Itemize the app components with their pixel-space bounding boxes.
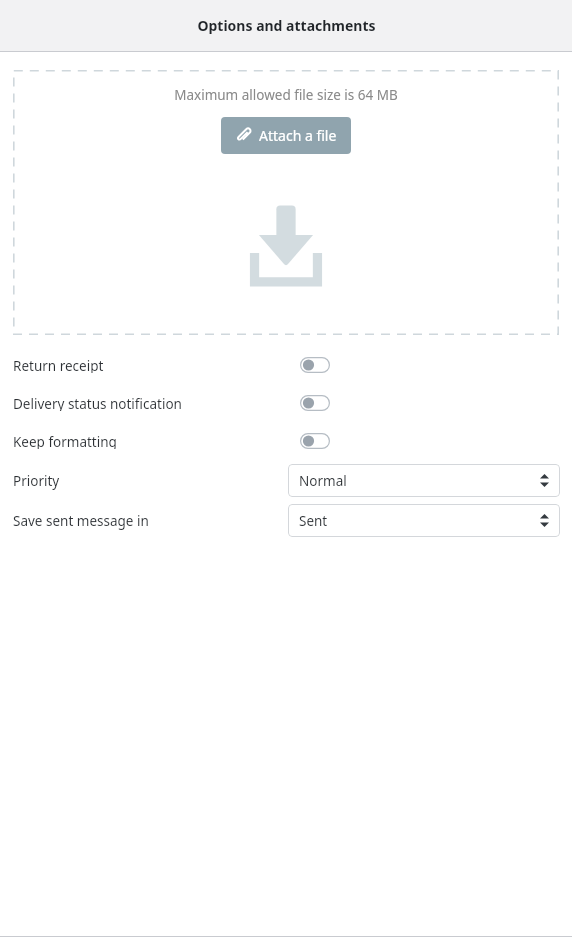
staticText: Delivery status notification — [13, 395, 182, 411]
staticText: Options and attachments — [197, 16, 376, 35]
button[interactable]: Normal — [288, 464, 560, 497]
button[interactable]: Keep formatting — [300, 433, 330, 449]
button[interactable]: Sent — [288, 504, 560, 537]
staticText: Normal — [299, 472, 347, 490]
button[interactable]: Delivery status notification — [300, 395, 330, 411]
staticText: Return receipt — [13, 357, 104, 373]
staticText: Attach a file — [259, 126, 337, 145]
button[interactable]: Return receipt — [300, 357, 330, 373]
staticText: Priority — [13, 472, 60, 490]
staticText: Maximum allowed file size is 64 MB — [174, 86, 398, 104]
staticText: Keep formatting — [13, 433, 117, 449]
staticText: Sent — [299, 512, 328, 530]
staticText: Save sent message in — [13, 512, 149, 530]
button[interactable]: Attach a file — [221, 117, 351, 154]
